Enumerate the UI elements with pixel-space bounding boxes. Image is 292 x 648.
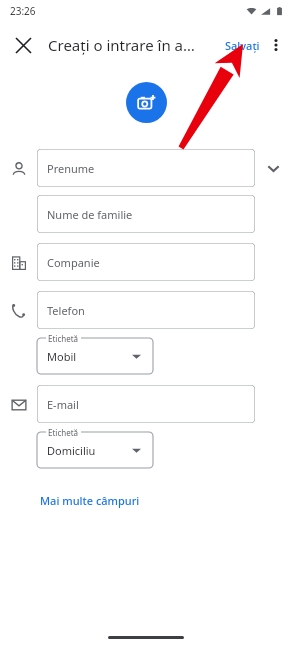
- button[interactable]: E-mail: [37, 385, 255, 423]
- staticText: Mai multe câmpuri: [40, 493, 140, 508]
- button[interactable]: Salvați: [221, 34, 264, 57]
- button[interactable]: Prenume: [37, 149, 255, 187]
- button[interactable]: Nume de familie: [37, 195, 255, 233]
- button[interactable]: More options: [261, 30, 291, 60]
- button[interactable]: Add photo: [126, 82, 167, 123]
- staticText: Etichetă: [48, 427, 79, 438]
- staticText: Nume de familie: [47, 207, 133, 222]
- staticText: Prenume: [47, 161, 95, 176]
- staticText: Creați o intrare în agen…: [48, 35, 196, 55]
- button[interactable]: Companie: [37, 243, 255, 281]
- staticText: E-mail: [47, 397, 79, 412]
- staticText: Domiciliu: [47, 443, 96, 458]
- button[interactable]: Etichetă: [37, 338, 153, 374]
- button[interactable]: Telefon: [37, 291, 255, 329]
- staticText: Telefon: [47, 303, 85, 318]
- staticText: Salvați: [225, 38, 260, 53]
- button[interactable]: Expand name fields: [255, 150, 292, 187]
- button[interactable]: Mai multe câmpuri: [37, 490, 143, 511]
- staticText: Mobil: [47, 349, 77, 364]
- staticText: Etichetă: [48, 333, 79, 344]
- button[interactable]: Close: [6, 28, 40, 62]
- staticText: 23:26: [10, 4, 36, 18]
- button[interactable]: Etichetă: [37, 432, 153, 468]
- staticText: Companie: [47, 255, 100, 270]
